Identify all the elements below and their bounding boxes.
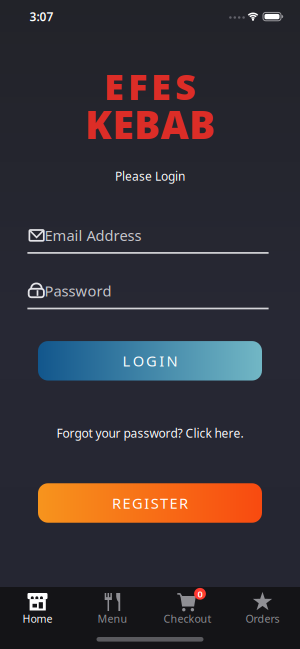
button[interactable]: Email Address xyxy=(25,226,271,262)
button[interactable]: Orders xyxy=(225,587,300,649)
staticText: 0 xyxy=(197,588,202,600)
staticText: Orders xyxy=(245,611,279,626)
staticText: N xyxy=(167,351,178,371)
staticText: S xyxy=(151,493,159,513)
button[interactable]: Forgot your password? Click here. xyxy=(56,425,243,441)
button[interactable]: R xyxy=(38,483,262,523)
staticText: R xyxy=(112,493,121,513)
staticText: T xyxy=(160,493,168,513)
button[interactable]: Menu xyxy=(75,587,150,649)
button[interactable]: Home xyxy=(0,587,75,649)
staticText: I xyxy=(159,351,164,371)
button[interactable]: Password xyxy=(25,279,271,315)
staticText: E xyxy=(122,493,130,513)
staticText: Home xyxy=(22,611,52,626)
staticText: Please Login xyxy=(115,168,185,184)
staticText: 3:07 xyxy=(29,8,53,24)
staticText: Email Address xyxy=(44,225,141,245)
button[interactable]: L xyxy=(38,341,262,381)
staticText: G xyxy=(132,493,143,513)
staticText: E xyxy=(169,493,177,513)
staticText: I xyxy=(144,493,149,513)
staticText: L xyxy=(122,351,130,371)
staticText: EFES xyxy=(104,62,196,110)
staticText: KEBAB xyxy=(85,98,215,150)
button[interactable]: 0 xyxy=(150,587,225,649)
staticText: O xyxy=(133,351,144,371)
staticText: G xyxy=(146,351,157,371)
staticText: Password xyxy=(44,281,111,300)
staticText: Menu xyxy=(97,611,127,626)
staticText: Forgot your password? Click here. xyxy=(56,425,243,441)
staticText: Checkout xyxy=(163,611,211,626)
staticText: R xyxy=(179,493,188,513)
